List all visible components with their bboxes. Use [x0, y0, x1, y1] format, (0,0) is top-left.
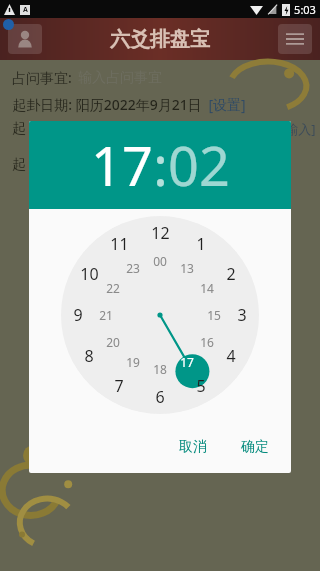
staticText: A [23, 5, 28, 15]
staticText: 确定 [241, 438, 269, 456]
staticText: 16 [200, 334, 214, 350]
staticText: 六爻排盘宝 [110, 27, 210, 52]
staticText: 12 [151, 222, 170, 244]
staticText: 7 [114, 375, 124, 397]
staticText: 6 [155, 386, 165, 408]
staticText: 9 [73, 304, 83, 326]
button[interactable]: 取消 [169, 432, 217, 462]
staticText: 取消 [179, 438, 207, 456]
staticText: 23 [126, 260, 140, 276]
staticText: 5:03 [294, 2, 316, 17]
staticText: 17 [91, 128, 153, 202]
staticText: 17 [180, 354, 194, 370]
staticText: 10 [80, 263, 99, 285]
staticText: 02 [168, 128, 230, 202]
staticText: 起 [12, 120, 26, 138]
staticText: 20 [106, 334, 120, 350]
staticText: 21 [99, 307, 113, 323]
staticText: 11 [110, 233, 129, 255]
staticText: 5 [196, 375, 206, 397]
staticText: [设置] [208, 95, 246, 114]
button[interactable]: [设置] [208, 95, 246, 114]
staticText: 输入占问事宜 [78, 69, 162, 87]
staticText: 占问事宜: [12, 68, 72, 87]
staticText: 18 [153, 361, 167, 377]
staticText: 15 [207, 307, 221, 323]
staticText: 1 [196, 233, 206, 255]
staticText: : [153, 128, 168, 202]
staticText: 起 [12, 156, 26, 174]
button[interactable]: Profile [8, 24, 42, 54]
button[interactable]: Menu [278, 24, 312, 54]
staticText: 3 [237, 304, 247, 326]
staticText: 13 [180, 260, 194, 276]
staticText: 2 [226, 263, 236, 285]
staticText: 00 [153, 253, 167, 269]
button[interactable] [59, 443, 261, 473]
staticText: 4 [226, 345, 236, 367]
button[interactable]: 确定 [231, 432, 279, 462]
staticText: 19 [126, 354, 140, 370]
staticText: 输入] [285, 120, 316, 138]
staticText: 起卦日期: 阳历2022年9月21日 [12, 95, 202, 114]
staticText: 8 [84, 345, 94, 367]
button[interactable]: 02 [168, 128, 230, 202]
button[interactable]: 17 [91, 128, 153, 202]
staticText: 22 [106, 280, 120, 296]
staticText: 14 [200, 280, 214, 296]
